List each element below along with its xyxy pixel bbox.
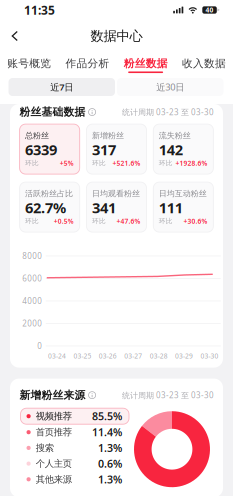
staticText: 环比 xyxy=(92,159,106,167)
staticText: +5% xyxy=(60,159,74,168)
staticText: 近30日 xyxy=(156,81,184,93)
button[interactable]: 返回 xyxy=(3,20,27,52)
staticText: 视频推荐 xyxy=(36,410,72,422)
button[interactable]: 流失粉丝 xyxy=(153,124,213,174)
staticText: 03-30 xyxy=(200,352,218,360)
staticText: 首页推荐 xyxy=(36,426,72,438)
staticText: +30.6% xyxy=(183,217,207,226)
staticText: 收入数据 xyxy=(182,57,226,70)
staticText: 环比 xyxy=(92,217,106,225)
staticText: 341 xyxy=(92,198,116,217)
staticText: 总粉丝 xyxy=(25,131,49,140)
staticText: 日均互动粉丝 xyxy=(159,189,207,198)
button[interactable]: 搜索 xyxy=(20,440,129,456)
staticText: 1.3% xyxy=(98,472,122,486)
staticText: 85.5% xyxy=(92,409,122,423)
staticText: 142 xyxy=(159,140,183,159)
button[interactable]: 收入数据 xyxy=(175,52,233,78)
staticText: 账号概览 xyxy=(7,57,51,70)
staticText: 其他来源 xyxy=(36,474,72,485)
staticText: 03-27 xyxy=(124,352,142,360)
staticText: 活跃粉丝占比 xyxy=(25,189,73,198)
staticText: 环比 xyxy=(159,159,173,167)
staticText: +1928.6% xyxy=(175,159,207,168)
button[interactable]: 活跃粉丝占比 xyxy=(20,182,80,232)
staticText: 6000 xyxy=(22,273,42,284)
staticText: 流失粉丝 xyxy=(159,131,191,140)
staticText: 8000 xyxy=(22,251,42,261)
staticText: 统计周期 03-23 至 03-30 xyxy=(122,390,214,400)
staticText: 作品分析 xyxy=(65,57,109,70)
staticText: +47.6% xyxy=(116,217,140,226)
button[interactable]: 近30日 xyxy=(117,78,223,96)
button[interactable]: 作品分析 xyxy=(58,52,116,78)
staticText: 03-26 xyxy=(99,352,117,360)
button[interactable]: 新增粉丝 xyxy=(86,124,147,174)
staticText: 111 xyxy=(159,198,183,217)
staticText: 新增粉丝 xyxy=(92,131,124,140)
button[interactable]: 日均观看粉丝 xyxy=(86,182,147,232)
button[interactable]: 视频推荐 xyxy=(20,408,129,424)
button[interactable]: 首页推荐 xyxy=(20,424,129,440)
staticText: 03-25 xyxy=(73,352,91,360)
staticText: 317 xyxy=(92,140,116,159)
button[interactable]: 其他来源 xyxy=(20,472,129,487)
staticText: 11:35 xyxy=(24,2,55,18)
button[interactable]: 总粉丝 xyxy=(20,124,80,174)
staticText: 03-28 xyxy=(150,352,168,360)
staticText: 粉丝基础数据 xyxy=(20,105,86,119)
staticText: 03-29 xyxy=(175,352,193,360)
staticText: 近7日 xyxy=(50,81,73,93)
staticText: 1.3% xyxy=(98,441,122,455)
staticText: 03-24 xyxy=(48,352,66,360)
staticText: 环比 xyxy=(25,217,39,225)
staticText: 个人主页 xyxy=(36,458,72,469)
staticText: 0 xyxy=(37,341,42,351)
staticText: 4000 xyxy=(22,296,42,306)
staticText: 日均观看粉丝 xyxy=(92,189,140,198)
staticText: +521.6% xyxy=(112,159,140,168)
button[interactable]: 近7日 xyxy=(8,78,115,96)
staticText: 0.6% xyxy=(98,456,122,471)
staticText: 2000 xyxy=(22,318,42,329)
staticText: 62.7% xyxy=(25,198,66,217)
staticText: 统计周期 03-23 至 03-30 xyxy=(122,107,214,117)
staticText: 新增粉丝来源 xyxy=(20,389,86,402)
button[interactable]: 个人主页 xyxy=(20,456,129,471)
staticText: 数据中心 xyxy=(90,28,142,44)
staticText: 40 xyxy=(205,6,213,14)
staticText: 搜索 xyxy=(36,442,54,454)
staticText: 6339 xyxy=(25,140,57,159)
staticText: 环比 xyxy=(159,217,173,225)
staticText: 粉丝数据 xyxy=(124,57,168,70)
button[interactable]: 日均互动粉丝 xyxy=(153,182,213,232)
staticText: +0.5% xyxy=(54,217,74,226)
staticText: 11.4% xyxy=(92,425,122,439)
button[interactable]: 账号概览 xyxy=(0,52,58,78)
staticText: 环比 xyxy=(25,159,39,167)
button[interactable]: 粉丝数据 xyxy=(116,52,175,78)
